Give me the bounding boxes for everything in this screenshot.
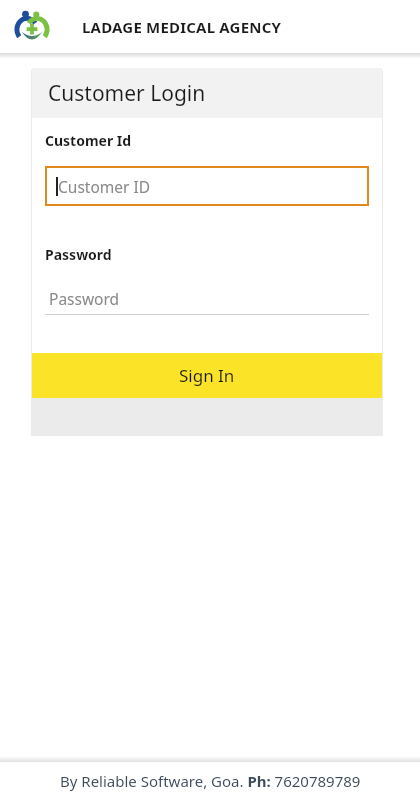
staticText: LADAGE MEDICAL AGENCY xyxy=(82,17,282,37)
staticText: Password xyxy=(49,288,120,309)
button[interactable]: Sign In xyxy=(32,353,382,398)
button[interactable]: Password xyxy=(45,282,369,315)
staticText: Customer Id xyxy=(45,131,132,150)
other: Ladage Medical Agency logo xyxy=(14,9,50,45)
staticText: Customer Login xyxy=(48,79,206,108)
staticText: Password xyxy=(45,245,112,264)
staticText: Customer ID xyxy=(58,176,151,197)
staticText: By Reliable Software, Goa. Ph: 762078978… xyxy=(60,771,361,791)
staticText: Sign In xyxy=(179,364,235,387)
button[interactable]: Customer ID xyxy=(45,166,369,206)
